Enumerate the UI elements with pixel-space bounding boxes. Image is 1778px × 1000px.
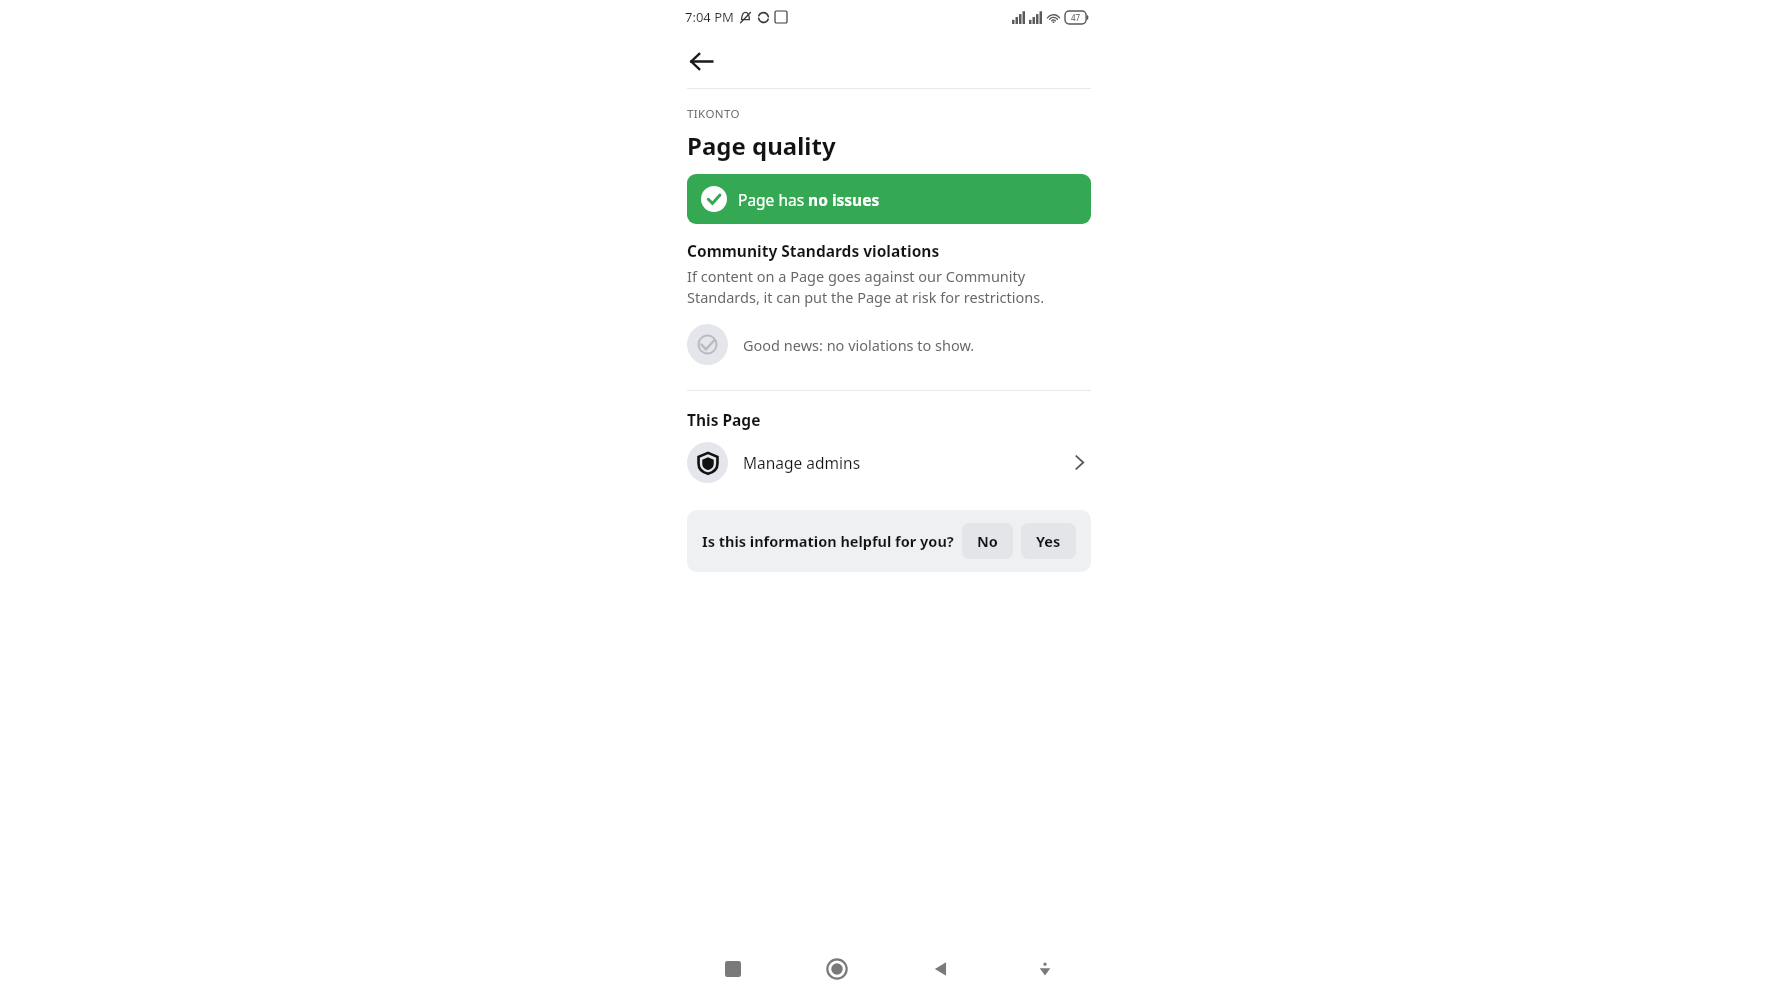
staticText: Yes — [1036, 531, 1061, 551]
staticText: If content on a Page goes against our Co… — [687, 266, 1091, 307]
staticText: No — [977, 531, 998, 551]
button[interactable]: Page has no issues — [687, 174, 1091, 224]
staticText: 47 — [1071, 12, 1081, 23]
button[interactable]: Back — [889, 938, 993, 1000]
staticText: Page quality — [687, 129, 836, 162]
staticText: Is this information helpful for you? — [702, 531, 954, 551]
button[interactable]: Manage admins — [687, 436, 1091, 488]
button[interactable]: Home — [785, 938, 889, 1000]
button[interactable]: Back — [679, 39, 723, 83]
button[interactable]: Recents — [681, 938, 785, 1000]
staticText: Manage admins — [743, 452, 1070, 473]
staticText: Page has no issues — [738, 189, 880, 210]
staticText: This Page — [687, 409, 761, 430]
staticText: 7:04 PM — [685, 8, 734, 26]
staticText: TIKONTO — [687, 106, 740, 122]
staticText: Community Standards violations — [687, 240, 940, 261]
staticText: Good news: no violations to show. — [743, 335, 975, 355]
button[interactable]: No — [962, 523, 1013, 559]
button[interactable]: Yes — [1021, 523, 1076, 559]
button[interactable]: Hide keyboard — [993, 938, 1097, 1000]
